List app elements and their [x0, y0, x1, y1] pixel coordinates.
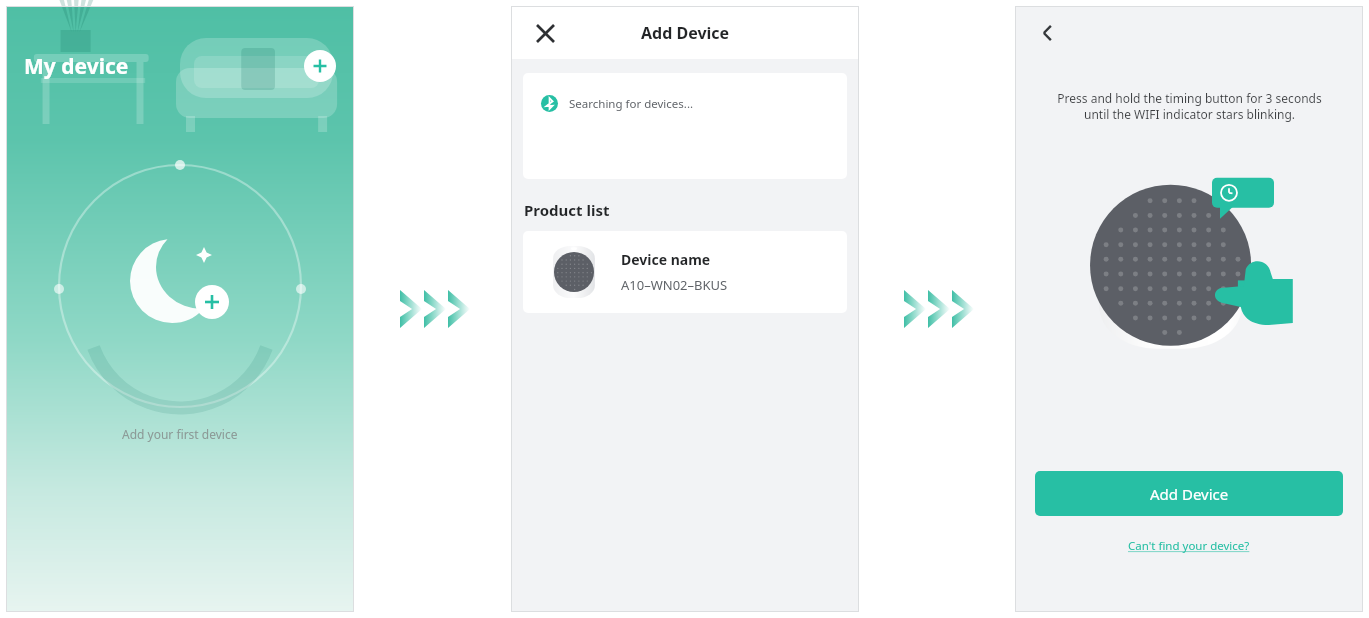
staticText: Press and hold the timing button for 3 s… — [1057, 90, 1322, 123]
staticText: My device — [24, 52, 129, 81]
button[interactable]: Can't find your device? — [1124, 534, 1254, 558]
button[interactable]: Searching for devices... — [523, 73, 847, 179]
staticText: Add Device — [1150, 484, 1229, 504]
staticText: Add Device — [641, 22, 730, 44]
button[interactable]: Device name — [523, 231, 847, 313]
button[interactable]: Close — [531, 19, 559, 47]
staticText: Searching for devices... — [569, 96, 694, 112]
staticText: Device name — [621, 250, 711, 269]
staticText: Add your first device — [122, 426, 238, 442]
staticText: A10–WN02–BKUS — [621, 276, 728, 294]
button[interactable]: Add Device — [1035, 471, 1343, 516]
button[interactable]: Add device — [304, 50, 336, 82]
staticText: Can't find your device? — [1128, 538, 1250, 554]
staticText: Product list — [524, 200, 610, 220]
button[interactable]: Back — [1033, 18, 1063, 48]
